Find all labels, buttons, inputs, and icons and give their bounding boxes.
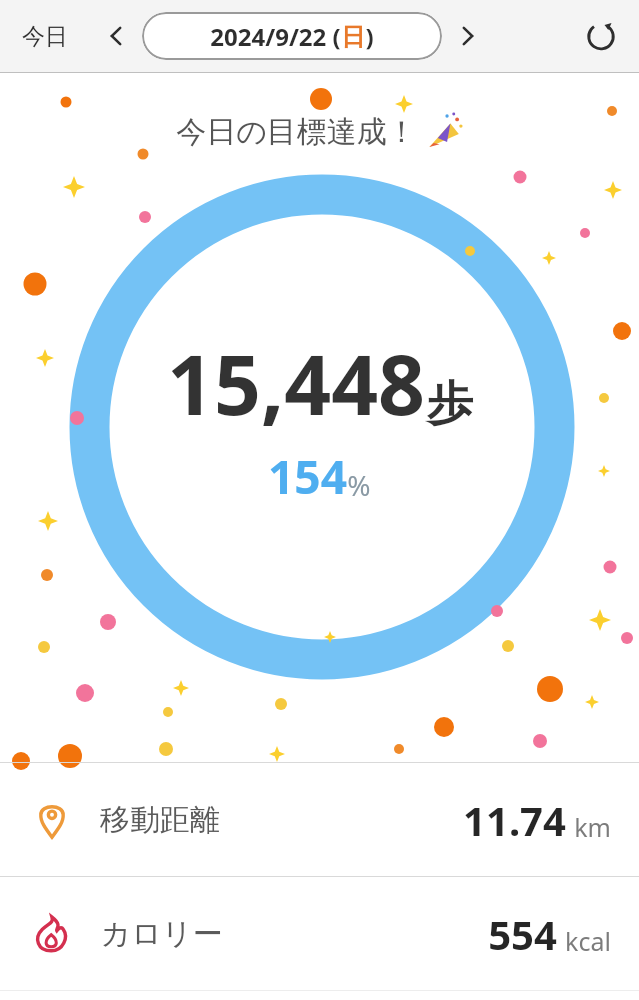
staticText: 歩	[427, 375, 473, 433]
button[interactable]: 今日	[10, 14, 80, 59]
staticText: 2024/9/22 (	[210, 20, 341, 53]
button[interactable]: 2024/9/22 (	[142, 12, 442, 60]
staticText: カロリー	[100, 915, 223, 953]
button[interactable]: 更新	[577, 12, 625, 60]
staticText: 154	[268, 445, 347, 508]
staticText: 15,448	[167, 327, 425, 439]
staticText: kcal	[565, 924, 611, 958]
button[interactable]: 前の日	[94, 14, 138, 58]
button[interactable]: カロリー	[0, 877, 639, 990]
button[interactable]: 移動距離	[0, 763, 639, 876]
button[interactable]: 次の日	[446, 14, 490, 58]
staticText: %	[347, 466, 371, 504]
staticText: km	[574, 810, 611, 844]
staticText: 日	[341, 22, 365, 52]
staticText: 554	[488, 907, 557, 961]
staticText: )	[365, 20, 374, 53]
staticText: 11.74	[463, 793, 566, 847]
staticText: 移動距離	[100, 801, 220, 839]
staticText: 今日	[22, 22, 68, 51]
staticText: 今日の目標達成！	[176, 113, 417, 151]
